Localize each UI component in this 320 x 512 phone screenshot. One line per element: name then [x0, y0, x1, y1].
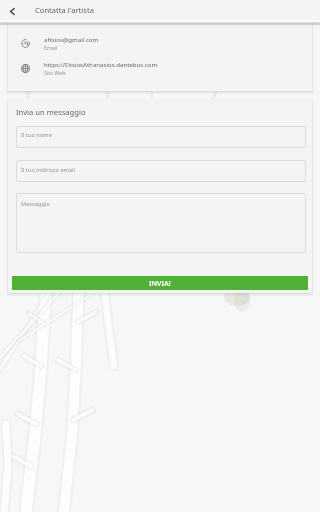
button[interactable]: Messaggio	[16, 193, 306, 253]
button[interactable]: Il tuo nome	[16, 126, 306, 148]
button[interactable]: INVIA!	[12, 276, 308, 290]
staticText: Email	[44, 44, 58, 51]
button[interactable]: Back	[6, 5, 19, 18]
staticText: Sito Web	[44, 69, 66, 76]
button[interactable]: Il tuo indirizzo email	[16, 160, 306, 182]
staticText: https://FitsiosAthanasios.dantebus.com	[44, 60, 158, 68]
staticText: Invia un messaggio	[16, 107, 86, 117]
button[interactable]: https://FitsiosAthanasios.dantebus.com	[8, 55, 312, 81]
button[interactable]: aftsios@gmail.com	[8, 30, 312, 56]
staticText: Contatta l'artista	[35, 5, 94, 15]
staticText: Il tuo indirizzo email	[21, 166, 76, 174]
staticText: Il tuo nome	[21, 131, 52, 139]
staticText: aftsios@gmail.com	[44, 35, 99, 43]
staticText: INVIA!	[149, 278, 171, 288]
staticText: Messaggio	[21, 200, 50, 208]
